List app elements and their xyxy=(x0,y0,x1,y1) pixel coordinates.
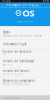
staticText: 11 xyxy=(3,53,7,57)
staticText: Número de compilación xyxy=(3,79,36,82)
staticText: RKQ1.200826.002 xyxy=(3,82,31,86)
button[interactable]: Back xyxy=(1,3,4,8)
staticText: Estado xyxy=(3,31,11,34)
staticText: M3.1-0 xyxy=(3,63,13,67)
staticText: Versión de Android xyxy=(3,50,32,53)
button[interactable]: Versión del kernel xyxy=(0,68,50,77)
button[interactable]: Versión de banda base xyxy=(0,58,50,68)
staticText: MIUI Global 12.5.4 | Estable xyxy=(17,21,33,23)
button[interactable]: Información legal xyxy=(0,40,50,48)
staticText: 92% xyxy=(42,0,48,2)
staticText: Información del dispositivo xyxy=(6,3,41,7)
staticText: Actualizaciones del sistema xyxy=(3,97,21,99)
staticText: OS xyxy=(22,7,34,19)
staticText: Número de teléfono, señal xyxy=(3,34,42,38)
button[interactable]: Versión de Android xyxy=(0,49,50,58)
staticText: ← xyxy=(2,4,4,7)
staticText: Versión del kernel xyxy=(3,69,30,73)
button[interactable]: Número de compilación xyxy=(0,78,50,87)
button[interactable]: Estado xyxy=(0,29,50,39)
staticText: 10:24 xyxy=(2,0,11,2)
staticText: Versión de banda base xyxy=(3,60,35,63)
staticText: 4.19.157-perf xyxy=(3,73,24,76)
staticText: Información legal xyxy=(3,42,27,46)
